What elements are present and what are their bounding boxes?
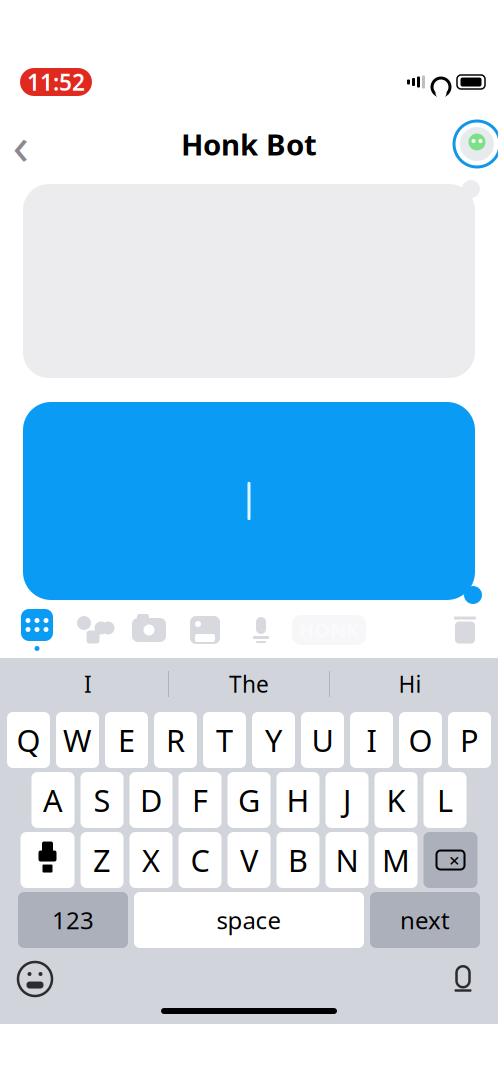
button[interactable]: B — [276, 832, 319, 888]
staticText: space — [216, 904, 281, 936]
staticText: T — [216, 720, 233, 760]
staticText: N — [335, 840, 358, 880]
staticText: R — [166, 720, 185, 760]
staticText: K — [386, 780, 405, 820]
button[interactable]: T — [203, 712, 246, 768]
staticText: E — [118, 720, 135, 760]
staticText: D — [140, 780, 162, 820]
staticText: U — [311, 720, 333, 760]
staticText: L — [437, 780, 453, 820]
staticText: 123 — [52, 904, 94, 936]
button[interactable]: V — [227, 832, 270, 888]
button[interactable]: K — [374, 772, 417, 828]
staticText: next — [400, 904, 450, 936]
button[interactable]: Hi — [330, 663, 490, 705]
button[interactable]: C — [178, 832, 221, 888]
staticText: B — [288, 840, 308, 880]
staticText: O — [408, 720, 432, 760]
button[interactable]: Delete — [423, 832, 477, 888]
button[interactable]: Camera — [121, 604, 177, 656]
staticText: J — [343, 780, 351, 820]
button[interactable]: S — [80, 772, 123, 828]
button[interactable]: O — [399, 712, 442, 768]
button[interactable]: I — [8, 663, 168, 705]
button[interactable]: G — [227, 772, 270, 828]
button[interactable]: Back — [0, 116, 51, 172]
staticText: F — [192, 780, 208, 820]
button[interactable]: F — [178, 772, 221, 828]
button[interactable]: L — [423, 772, 466, 828]
button[interactable]: J — [325, 772, 368, 828]
staticText: I — [366, 720, 376, 760]
button[interactable]: X — [129, 832, 172, 888]
button[interactable]: Apps — [9, 604, 65, 656]
button[interactable]: Q — [7, 712, 50, 768]
staticText: × — [449, 848, 460, 872]
button[interactable]: HONK — [289, 604, 369, 656]
staticText: G — [238, 780, 260, 820]
button[interactable]: W — [56, 712, 99, 768]
staticText: W — [63, 720, 92, 760]
staticText: Z — [93, 840, 111, 880]
button[interactable]: E — [105, 712, 148, 768]
button[interactable]: Y — [252, 712, 295, 768]
staticText: H — [286, 780, 309, 820]
button[interactable]: 123 — [18, 892, 128, 948]
button[interactable]: Photos — [177, 604, 233, 656]
button[interactable]: D — [129, 772, 172, 828]
staticText: Hi — [398, 669, 421, 699]
button[interactable]: The — [169, 663, 329, 705]
staticText: V — [240, 840, 258, 880]
button[interactable]: I — [350, 712, 393, 768]
button[interactable]: Stickers — [65, 604, 121, 656]
button[interactable]: Delete — [437, 604, 493, 656]
staticText: S — [93, 780, 110, 820]
button[interactable]: Shift — [20, 832, 74, 888]
staticText: Q — [16, 720, 40, 760]
button[interactable]: A — [31, 772, 74, 828]
button[interactable]: Audio — [233, 604, 289, 656]
button[interactable]: M — [374, 832, 417, 888]
button[interactable]: N — [325, 832, 368, 888]
staticText: X — [142, 840, 160, 880]
staticText: The — [229, 669, 269, 699]
staticText: ‹ — [12, 109, 29, 179]
button[interactable]: next — [370, 892, 480, 948]
staticText: P — [460, 720, 479, 760]
button[interactable]: space — [134, 892, 364, 948]
button[interactable]: H — [276, 772, 319, 828]
staticText: C — [190, 840, 209, 880]
button[interactable]: P — [448, 712, 491, 768]
button[interactable]: Dictation — [428, 951, 498, 1007]
staticText: A — [43, 780, 63, 820]
staticText: Honk Bot — [181, 124, 317, 163]
staticText: I — [84, 669, 92, 699]
staticText: M — [382, 840, 410, 880]
button[interactable]: R — [154, 712, 197, 768]
button[interactable]: Z — [80, 832, 123, 888]
button[interactable]: U — [301, 712, 344, 768]
staticText: 11:52 — [27, 67, 85, 97]
button[interactable]: Emoji — [0, 951, 70, 1007]
button[interactable]: Profile — [447, 116, 498, 172]
staticText: Y — [265, 720, 282, 760]
